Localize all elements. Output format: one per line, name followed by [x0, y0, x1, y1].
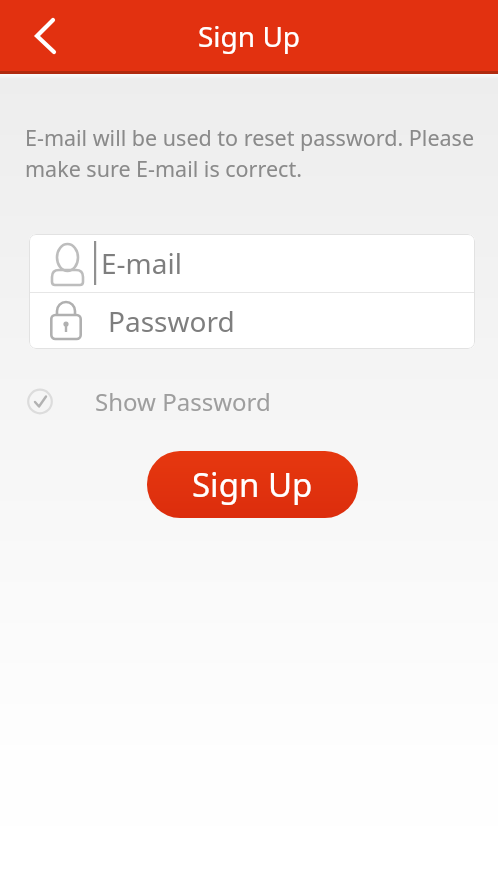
button[interactable]: E-mail — [29, 234, 475, 292]
staticText: E-mail will be used to reset password. P… — [25, 123, 475, 184]
button[interactable]: Password — [29, 293, 475, 349]
button[interactable]: Sign Up — [147, 451, 358, 518]
button[interactable] — [18, 8, 74, 64]
staticText: E-mail — [101, 244, 182, 282]
staticText: Password — [108, 302, 235, 340]
staticText: Show Password — [95, 385, 271, 418]
staticText: Sign Up — [198, 17, 301, 55]
staticText: Sign Up — [192, 462, 313, 507]
button[interactable]: Show Password — [27, 385, 271, 418]
